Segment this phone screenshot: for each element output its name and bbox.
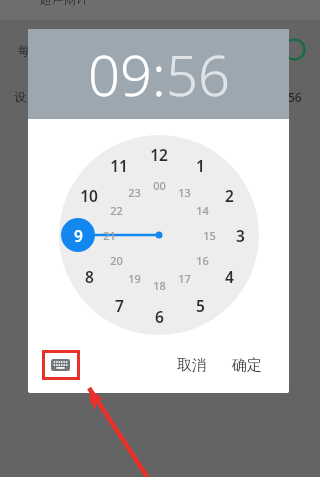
staticText: 56 xyxy=(288,89,302,105)
staticText: 4 xyxy=(225,266,234,287)
staticText: 超声闹计 xyxy=(40,0,88,6)
staticText: 取消 xyxy=(177,356,207,375)
staticText: 确定 xyxy=(232,356,262,375)
staticText: : xyxy=(152,36,166,112)
staticText: 15 xyxy=(203,228,216,243)
staticText: 1 xyxy=(196,155,205,176)
staticText: 12 xyxy=(150,144,168,165)
button[interactable]: 取消 xyxy=(169,348,215,383)
button[interactable]: Switch to keyboard input xyxy=(44,349,76,381)
staticText: 每 xyxy=(18,43,30,58)
button[interactable]: 确定 xyxy=(215,348,289,383)
staticText: 6 xyxy=(155,306,164,327)
button[interactable]: 56 xyxy=(166,36,230,112)
staticText: 7 xyxy=(115,295,124,316)
staticText: 17 xyxy=(178,271,191,286)
staticText: 20 xyxy=(110,253,123,268)
staticText: 3 xyxy=(236,225,245,246)
staticText: 8 xyxy=(85,266,94,287)
staticText: 9 xyxy=(74,225,83,246)
staticText: 16 xyxy=(196,253,209,268)
staticText: 13 xyxy=(178,185,191,200)
staticText: 10 xyxy=(80,185,98,206)
staticText: 22 xyxy=(110,203,123,218)
staticText: 19 xyxy=(128,271,141,286)
staticText: 23 xyxy=(128,185,141,200)
staticText: 2 xyxy=(225,185,234,206)
button[interactable]: 09 xyxy=(88,36,152,112)
staticText: 11 xyxy=(110,155,128,176)
staticText: 00 xyxy=(153,178,166,193)
staticText: 21 xyxy=(103,228,116,243)
staticText: 设 xyxy=(14,89,26,104)
staticText: 18 xyxy=(153,278,166,293)
staticText: 5 xyxy=(196,295,205,316)
staticText: 14 xyxy=(196,203,209,218)
